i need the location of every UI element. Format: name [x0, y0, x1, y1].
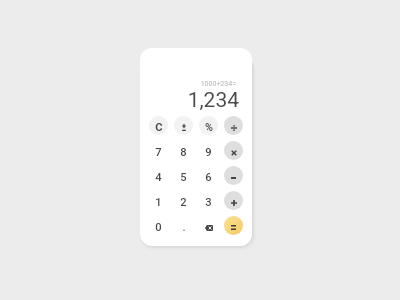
button[interactable]: Six	[199, 166, 218, 185]
staticText: 9	[205, 146, 212, 159]
button[interactable]: Zero	[149, 216, 168, 235]
button[interactable]: Nine	[199, 141, 218, 160]
staticText: 8	[180, 146, 187, 159]
button[interactable]: Backspace	[199, 216, 218, 235]
button[interactable]: One	[149, 191, 168, 210]
button[interactable]: Minus	[224, 166, 243, 185]
button[interactable]: Clear	[149, 116, 168, 135]
button[interactable]: Multiply	[224, 141, 243, 160]
staticText: C	[155, 121, 163, 134]
button[interactable]: Seven	[149, 141, 168, 160]
button[interactable]: Three	[199, 191, 218, 210]
button[interactable]: Plus minus	[174, 116, 193, 135]
button[interactable]: Plus	[224, 191, 243, 210]
button[interactable]: Four	[149, 166, 168, 185]
staticText: 2	[180, 196, 187, 209]
staticText: 4	[155, 171, 162, 184]
button[interactable]: Percent	[199, 116, 218, 135]
button[interactable]: Divide	[224, 116, 243, 135]
button[interactable]: Eight	[174, 141, 193, 160]
staticText: 7	[155, 146, 162, 159]
staticText: 0	[155, 221, 162, 234]
button[interactable]: Two	[174, 191, 193, 210]
staticText: 1000+234=	[200, 80, 236, 88]
staticText: 5	[180, 171, 187, 184]
staticText: .	[182, 221, 186, 234]
staticText: 1	[155, 196, 162, 209]
staticText: 3	[205, 196, 212, 209]
staticText: 1,234	[187, 88, 239, 113]
button[interactable]: Equals	[224, 216, 243, 235]
staticText: %	[205, 121, 213, 134]
button[interactable]: Decimal point	[174, 216, 193, 235]
button[interactable]: Five	[174, 166, 193, 185]
staticText: 6	[205, 171, 212, 184]
